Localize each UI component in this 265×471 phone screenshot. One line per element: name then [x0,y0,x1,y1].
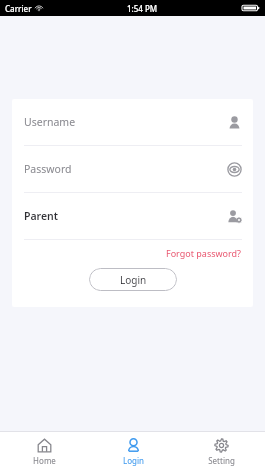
staticText: Parent [24,209,59,223]
staticText: 1:54 PM [127,3,158,14]
button[interactable]: Parent [12,193,253,239]
button[interactable]: Username [12,99,253,145]
staticText: Forgot password? [166,247,242,259]
staticText: Login [120,273,147,287]
staticText: Password [24,162,72,176]
staticText: Username [24,115,76,129]
staticText: Setting [208,455,235,466]
other: Show password [227,162,242,177]
button[interactable]: Login [89,268,177,291]
button[interactable]: Setting [177,432,265,471]
other: Select role [227,209,242,224]
other: Username [227,115,242,130]
button[interactable]: Login [89,432,177,471]
staticText: Carrier [5,3,32,14]
button[interactable]: Home [0,432,89,471]
button[interactable]: Forgot password? [12,247,242,259]
staticText: Login [123,455,144,466]
staticText: Home [33,455,56,466]
button[interactable]: Password [12,146,253,192]
